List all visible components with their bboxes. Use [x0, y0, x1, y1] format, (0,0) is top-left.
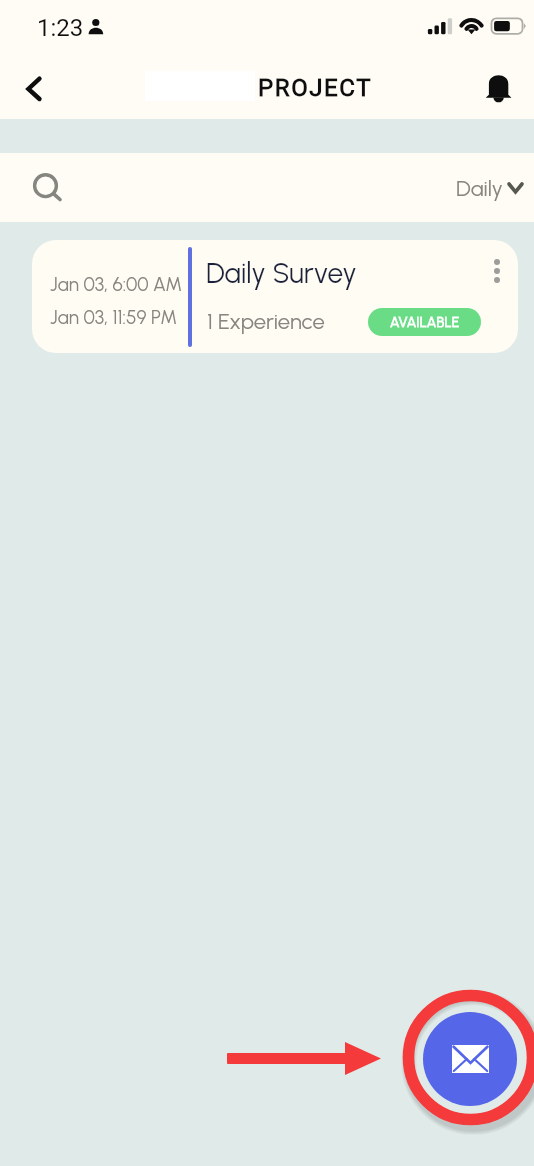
staticText: PROJECT — [258, 74, 373, 102]
staticText: 1:23 — [37, 14, 84, 42]
staticText: 1 Experience — [207, 308, 325, 334]
button[interactable]: Back — [4, 55, 62, 119]
button[interactable]: Daily — [442, 161, 534, 215]
button[interactable]: Notifications — [478, 55, 534, 119]
staticText: Daily — [456, 175, 503, 201]
staticText: AVAILABLE — [390, 314, 460, 331]
button[interactable]: AVAILABLE — [368, 308, 481, 336]
button[interactable]: Search — [0, 153, 82, 222]
button[interactable]: Jan 03, 6:00 AM — [32, 240, 518, 353]
staticText: Jan 03, 6:00 AM — [50, 273, 182, 296]
staticText: Jan 03, 11:59 PM — [50, 306, 178, 329]
button[interactable]: Compose message — [423, 1012, 517, 1106]
button[interactable]: More options — [487, 256, 507, 286]
staticText: Daily Survey — [206, 256, 357, 290]
